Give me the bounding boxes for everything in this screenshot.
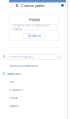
staticText: Введите или отсканируйте наряд	[13, 24, 49, 31]
button[interactable]: Сроки	[0, 96, 70, 100]
staticText: 4	[3, 72, 5, 76]
staticText: Цеха	[9, 80, 14, 83]
button[interactable]: Задачи	[0, 104, 70, 108]
staticText: Добавить	[27, 34, 40, 38]
staticText: 3	[3, 55, 5, 59]
button[interactable]: Операции	[0, 88, 70, 91]
staticText: Материалы	[7, 72, 21, 76]
button[interactable]: Menu	[15, 3, 19, 8]
staticText: Единица измерения	[10, 64, 38, 68]
button[interactable]: Цеха	[0, 80, 70, 83]
staticText: Операции	[9, 88, 23, 91]
staticText: Задачи	[9, 104, 19, 108]
staticText: Список работ	[21, 3, 45, 8]
button[interactable]: Добавить	[23, 33, 45, 39]
staticText: Поиск по наряду	[8, 55, 32, 59]
button[interactable]: Account	[60, 3, 65, 8]
staticText: Сроки	[9, 96, 18, 100]
staticText: Наряд	[28, 16, 39, 22]
